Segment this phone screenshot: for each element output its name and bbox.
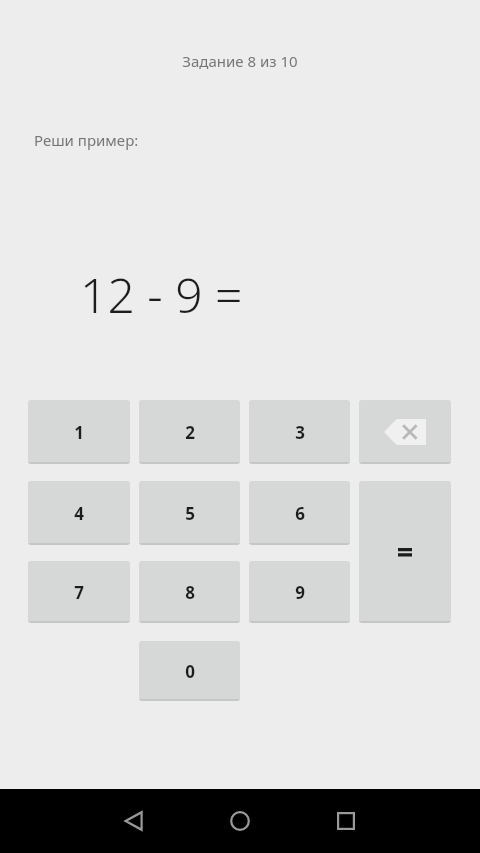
- button[interactable]: Home: [216, 797, 264, 845]
- button[interactable]: Back: [110, 797, 158, 845]
- button[interactable]: Backspace: [359, 400, 451, 464]
- staticText: 7: [74, 581, 84, 604]
- button[interactable]: 2: [139, 400, 240, 464]
- staticText: Задание 8 из 10: [182, 51, 298, 71]
- staticText: Реши пример:: [34, 130, 139, 150]
- button[interactable]: 8: [139, 561, 240, 623]
- staticText: 5: [185, 502, 195, 525]
- staticText: 1: [74, 421, 84, 444]
- staticText: 6: [295, 502, 305, 525]
- staticText: 9: [295, 581, 305, 604]
- staticText: 8: [185, 581, 195, 604]
- staticText: 2: [185, 421, 195, 444]
- staticText: 0: [185, 660, 195, 683]
- staticText: 12 - 9 =: [80, 262, 243, 327]
- button[interactable]: 9: [249, 561, 350, 623]
- button[interactable]: 7: [28, 561, 130, 623]
- button[interactable]: Recent apps: [322, 797, 370, 845]
- button[interactable]: Equals: [359, 481, 451, 623]
- button[interactable]: 1: [28, 400, 130, 464]
- button[interactable]: 5: [139, 481, 240, 545]
- staticText: 4: [74, 502, 84, 525]
- button[interactable]: 0: [139, 641, 240, 701]
- button[interactable]: 6: [249, 481, 350, 545]
- button[interactable]: 4: [28, 481, 130, 545]
- button[interactable]: 3: [249, 400, 350, 464]
- staticText: 3: [295, 421, 305, 444]
